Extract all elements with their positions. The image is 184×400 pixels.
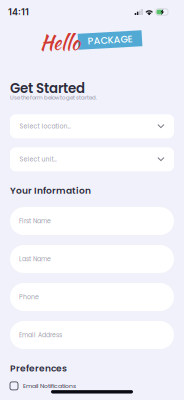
- staticText: Select location...: [19, 122, 70, 131]
- staticText: Hello: [40, 28, 80, 57]
- staticText: Use the form below to get started.: [10, 94, 97, 101]
- button[interactable]: Phone: [10, 283, 174, 311]
- button[interactable]: Select unit...: [10, 147, 174, 171]
- staticText: Select unit...: [19, 155, 56, 164]
- staticText: First Name: [19, 217, 51, 225]
- staticText: Email Notifications: [23, 382, 76, 390]
- button[interactable]: Email Address: [10, 321, 174, 349]
- staticText: Get Started: [10, 79, 85, 98]
- button[interactable]: Last Name: [10, 245, 174, 273]
- button[interactable]: Select location...: [10, 114, 174, 138]
- staticText: 14:11: [8, 6, 29, 17]
- button[interactable]: Email Notifications: [10, 375, 174, 390]
- staticText: Phone: [19, 293, 39, 301]
- staticText: Email Address: [19, 331, 62, 339]
- button[interactable]: First Name: [10, 207, 174, 235]
- staticText: Your Information: [10, 184, 91, 197]
- staticText: PACKAGE: [87, 33, 132, 47]
- staticText: Last Name: [19, 255, 51, 263]
- staticText: Preferences: [10, 362, 67, 375]
